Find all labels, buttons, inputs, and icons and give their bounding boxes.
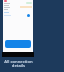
button[interactable] bbox=[5, 40, 31, 48]
staticText: All connection details bbox=[4, 59, 33, 69]
